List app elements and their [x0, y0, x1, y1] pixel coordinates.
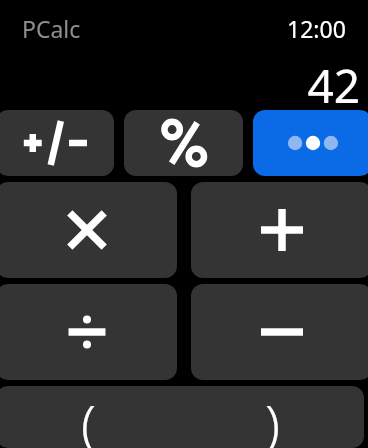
- staticText: ): [265, 386, 280, 448]
- staticText: 12:00: [287, 13, 346, 44]
- staticText: PCalc: [22, 13, 81, 44]
- button[interactable]: Divide: [0, 284, 177, 380]
- button[interactable]: Percent: [124, 110, 243, 176]
- button[interactable]: Multiply: [0, 182, 177, 278]
- button[interactable]: Plus minus sign: [0, 110, 114, 176]
- button[interactable]: Add: [191, 182, 368, 278]
- staticText: 42: [307, 54, 360, 106]
- button[interactable]: ): [180, 386, 364, 448]
- button[interactable]: More functions: [253, 110, 368, 176]
- staticText: (: [81, 386, 96, 448]
- button[interactable]: Subtract: [191, 284, 368, 380]
- button[interactable]: (: [0, 386, 180, 448]
